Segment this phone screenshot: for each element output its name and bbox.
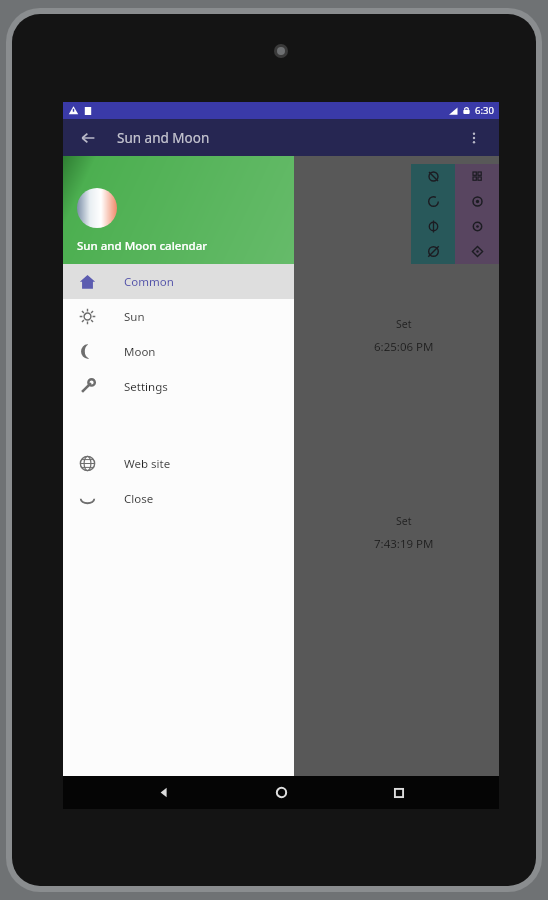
staticText: Settings	[124, 379, 168, 395]
staticText: 6:30	[475, 104, 494, 117]
button[interactable]: Tool 6	[455, 214, 499, 239]
button[interactable]: Common	[63, 264, 294, 299]
staticText: 22	[153, 369, 171, 389]
button[interactable]: Tool 7	[455, 239, 499, 264]
staticText: Close	[124, 491, 154, 507]
button[interactable]: Web site	[63, 446, 294, 481]
button[interactable]: Back	[75, 125, 101, 151]
button[interactable]: Recents	[381, 776, 417, 809]
staticText: 12/4/16 11:02:08 AM	[77, 480, 188, 496]
staticText: 5:52:41 AM	[73, 339, 133, 355]
button[interactable]: Close	[63, 481, 294, 516]
staticText: Set	[396, 317, 412, 331]
button[interactable]: Home	[263, 776, 299, 809]
staticText: 17	[153, 279, 171, 299]
button[interactable]: Tool 1	[411, 189, 455, 214]
staticText: Sun and Moon	[117, 129, 210, 147]
button[interactable]: Tool 4	[455, 164, 499, 189]
staticText: Sun and Moon calendar	[77, 238, 208, 254]
staticText: 7:43:19 PM	[374, 536, 434, 552]
button[interactable]: Tool 5	[455, 189, 499, 214]
staticText: Moon	[124, 344, 156, 360]
staticText: GMT+00:00	[77, 198, 136, 213]
staticText: 11/20/16 11:03:27 AM	[77, 444, 195, 460]
button[interactable]: Settings	[63, 369, 294, 404]
staticText: 11/27/16 6:19:48 PM	[77, 462, 188, 478]
staticText: 6:25:06 PM	[374, 339, 434, 355]
staticText: Set	[396, 514, 412, 528]
button[interactable]: Tool 2	[411, 214, 455, 239]
button[interactable]: Sun	[63, 299, 294, 334]
button[interactable]: Tool 3	[411, 239, 455, 264]
staticText: Web site	[124, 456, 171, 472]
button[interactable]: Back	[145, 776, 181, 809]
staticText: Common	[124, 274, 174, 290]
button[interactable]: Moon	[63, 334, 294, 369]
button[interactable]: More options	[461, 125, 487, 151]
button[interactable]: Tool 0	[411, 164, 455, 189]
staticText: Sun	[124, 309, 145, 325]
